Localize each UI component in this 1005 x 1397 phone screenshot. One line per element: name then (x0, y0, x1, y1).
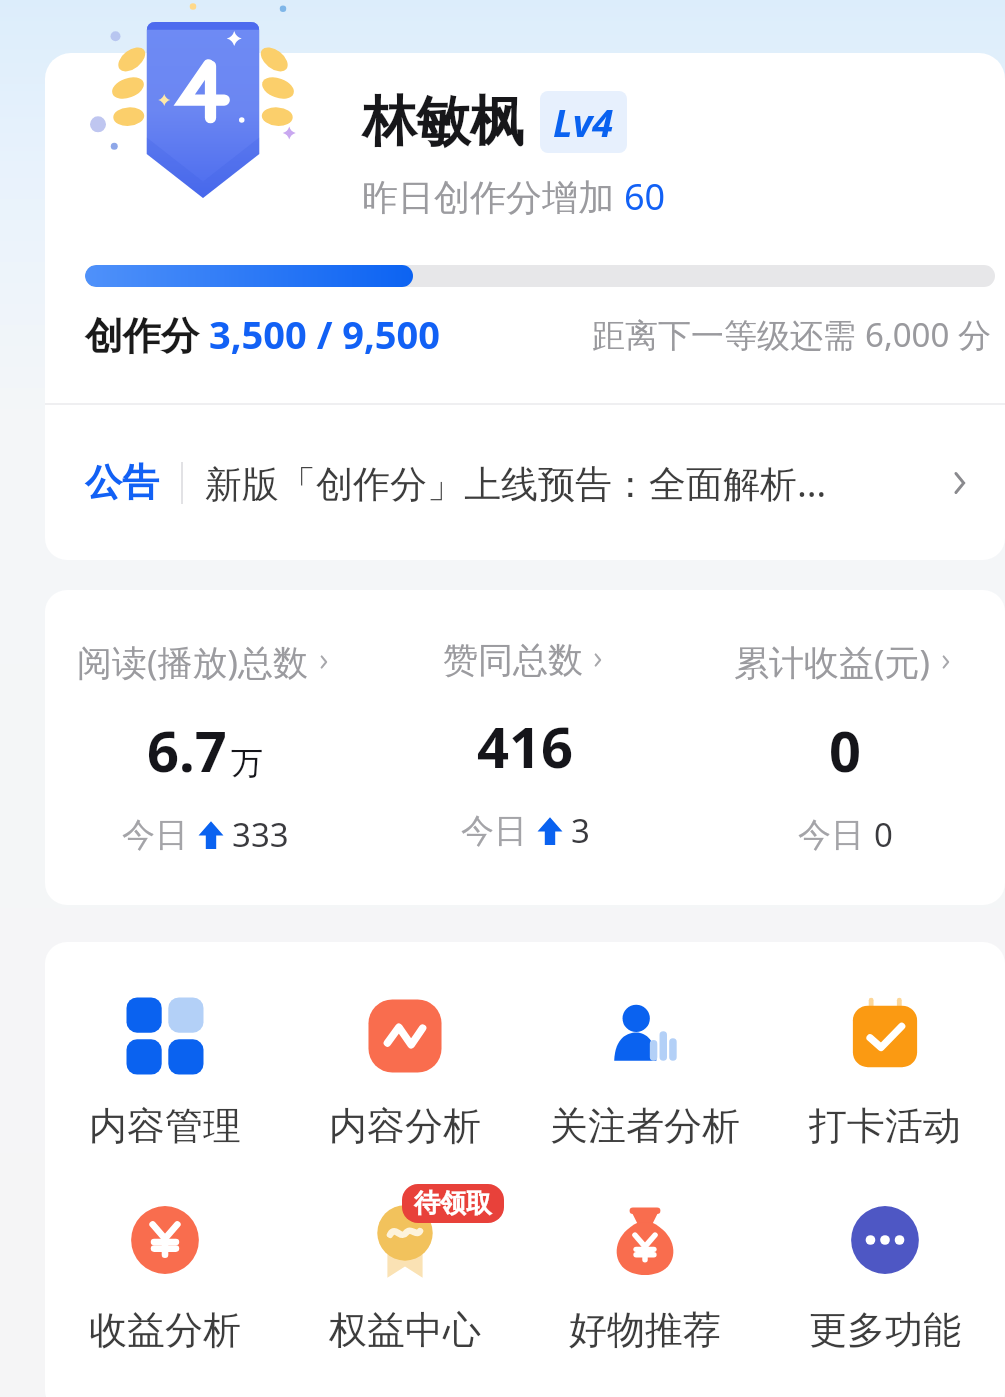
staticText: 3,500 / 9,500 (209, 308, 441, 360)
button[interactable]: 赞同总数 (365, 590, 685, 905)
staticText: 林敏枫 (362, 88, 524, 156)
staticText: 关注者分析 (550, 1102, 740, 1150)
staticText: 公告 (85, 459, 159, 506)
staticText: 内容管理 (89, 1102, 241, 1150)
button[interactable]: 内容分析 (285, 988, 525, 1150)
staticText: 416 (477, 708, 574, 784)
staticText: 今日 (798, 814, 864, 856)
staticText: 3 (571, 808, 590, 853)
staticText: 0 (829, 712, 862, 788)
button[interactable]: 内容管理 (45, 988, 285, 1150)
staticText: 333 (232, 812, 289, 857)
staticText: 赞同总数 (443, 638, 583, 682)
button[interactable]: 打卡活动 (765, 988, 1005, 1150)
staticText: 内容分析 (329, 1102, 481, 1150)
staticText: 新版「创作分」上线预告：全面解析… (205, 457, 827, 508)
button[interactable]: 收益分析 (45, 1192, 285, 1354)
staticText: 距离下一等级还需 (592, 312, 865, 357)
button[interactable]: 累计收益(元) (685, 590, 1005, 905)
staticText: Lv4 (553, 96, 614, 148)
button[interactable]: 关注者分析 (525, 988, 765, 1150)
staticText: 阅读(播放)总数 (77, 638, 309, 686)
staticText: 打卡活动 (809, 1102, 961, 1150)
staticText: 万 (231, 743, 263, 783)
button[interactable]: 好物推荐 (525, 1192, 765, 1354)
staticText: 6,000 分 (865, 312, 991, 357)
button[interactable]: 公告 (45, 405, 1005, 560)
staticText: 今日 (122, 814, 188, 856)
staticText: 今日 (461, 810, 527, 852)
staticText: 更多功能 (809, 1306, 961, 1354)
button[interactable]: 阅读(播放)总数 (45, 590, 365, 905)
staticText: 累计收益(元) (734, 638, 931, 686)
staticText: 6.7 (147, 712, 227, 788)
staticText: 昨日创作分增加 (362, 172, 624, 221)
staticText: 收益分析 (89, 1306, 241, 1354)
staticText: 创作分 (85, 308, 209, 360)
staticText: 60 (624, 172, 666, 221)
button[interactable]: 更多功能 (765, 1192, 1005, 1354)
staticText: 权益中心 (329, 1306, 481, 1354)
staticText: 好物推荐 (569, 1306, 721, 1354)
staticText: 0 (874, 812, 893, 857)
button[interactable]: 权益中心 (285, 1192, 525, 1354)
staticText: 待领取 (414, 1187, 492, 1220)
